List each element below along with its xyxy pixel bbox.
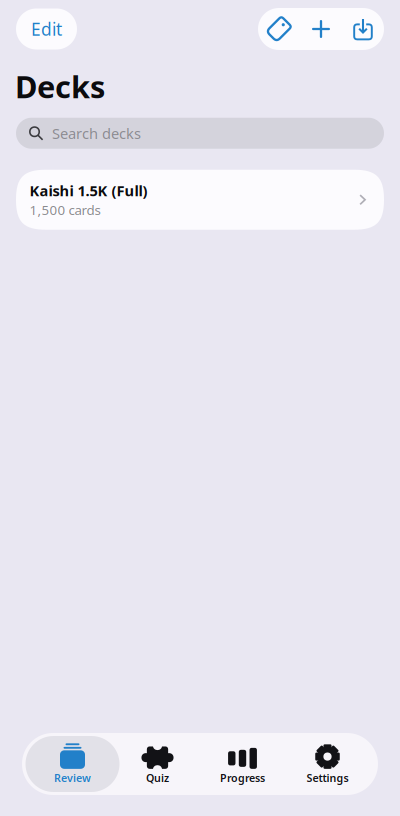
- button[interactable]: Quiz: [115, 736, 200, 792]
- button[interactable]: Review: [30, 736, 115, 792]
- button[interactable]: Kaishi 1.5K (Full): [16, 170, 384, 230]
- staticText: 1,500 cards: [29, 201, 100, 219]
- staticText: Settings: [306, 771, 348, 785]
- button[interactable]: Tags: [258, 8, 300, 50]
- staticText: Quiz: [146, 771, 169, 785]
- button[interactable]: Edit: [16, 8, 77, 49]
- button[interactable]: Import deck: [342, 8, 384, 50]
- button[interactable]: New deck: [300, 8, 342, 50]
- staticText: Review: [54, 771, 91, 785]
- staticText: Kaishi 1.5K (Full): [29, 181, 147, 200]
- staticText: Decks: [15, 66, 105, 107]
- staticText: Progress: [220, 771, 265, 785]
- button[interactable]: Progress: [200, 736, 285, 792]
- staticText: Edit: [31, 17, 62, 40]
- staticText: Search decks: [52, 123, 141, 143]
- button[interactable]: Settings: [285, 736, 370, 792]
